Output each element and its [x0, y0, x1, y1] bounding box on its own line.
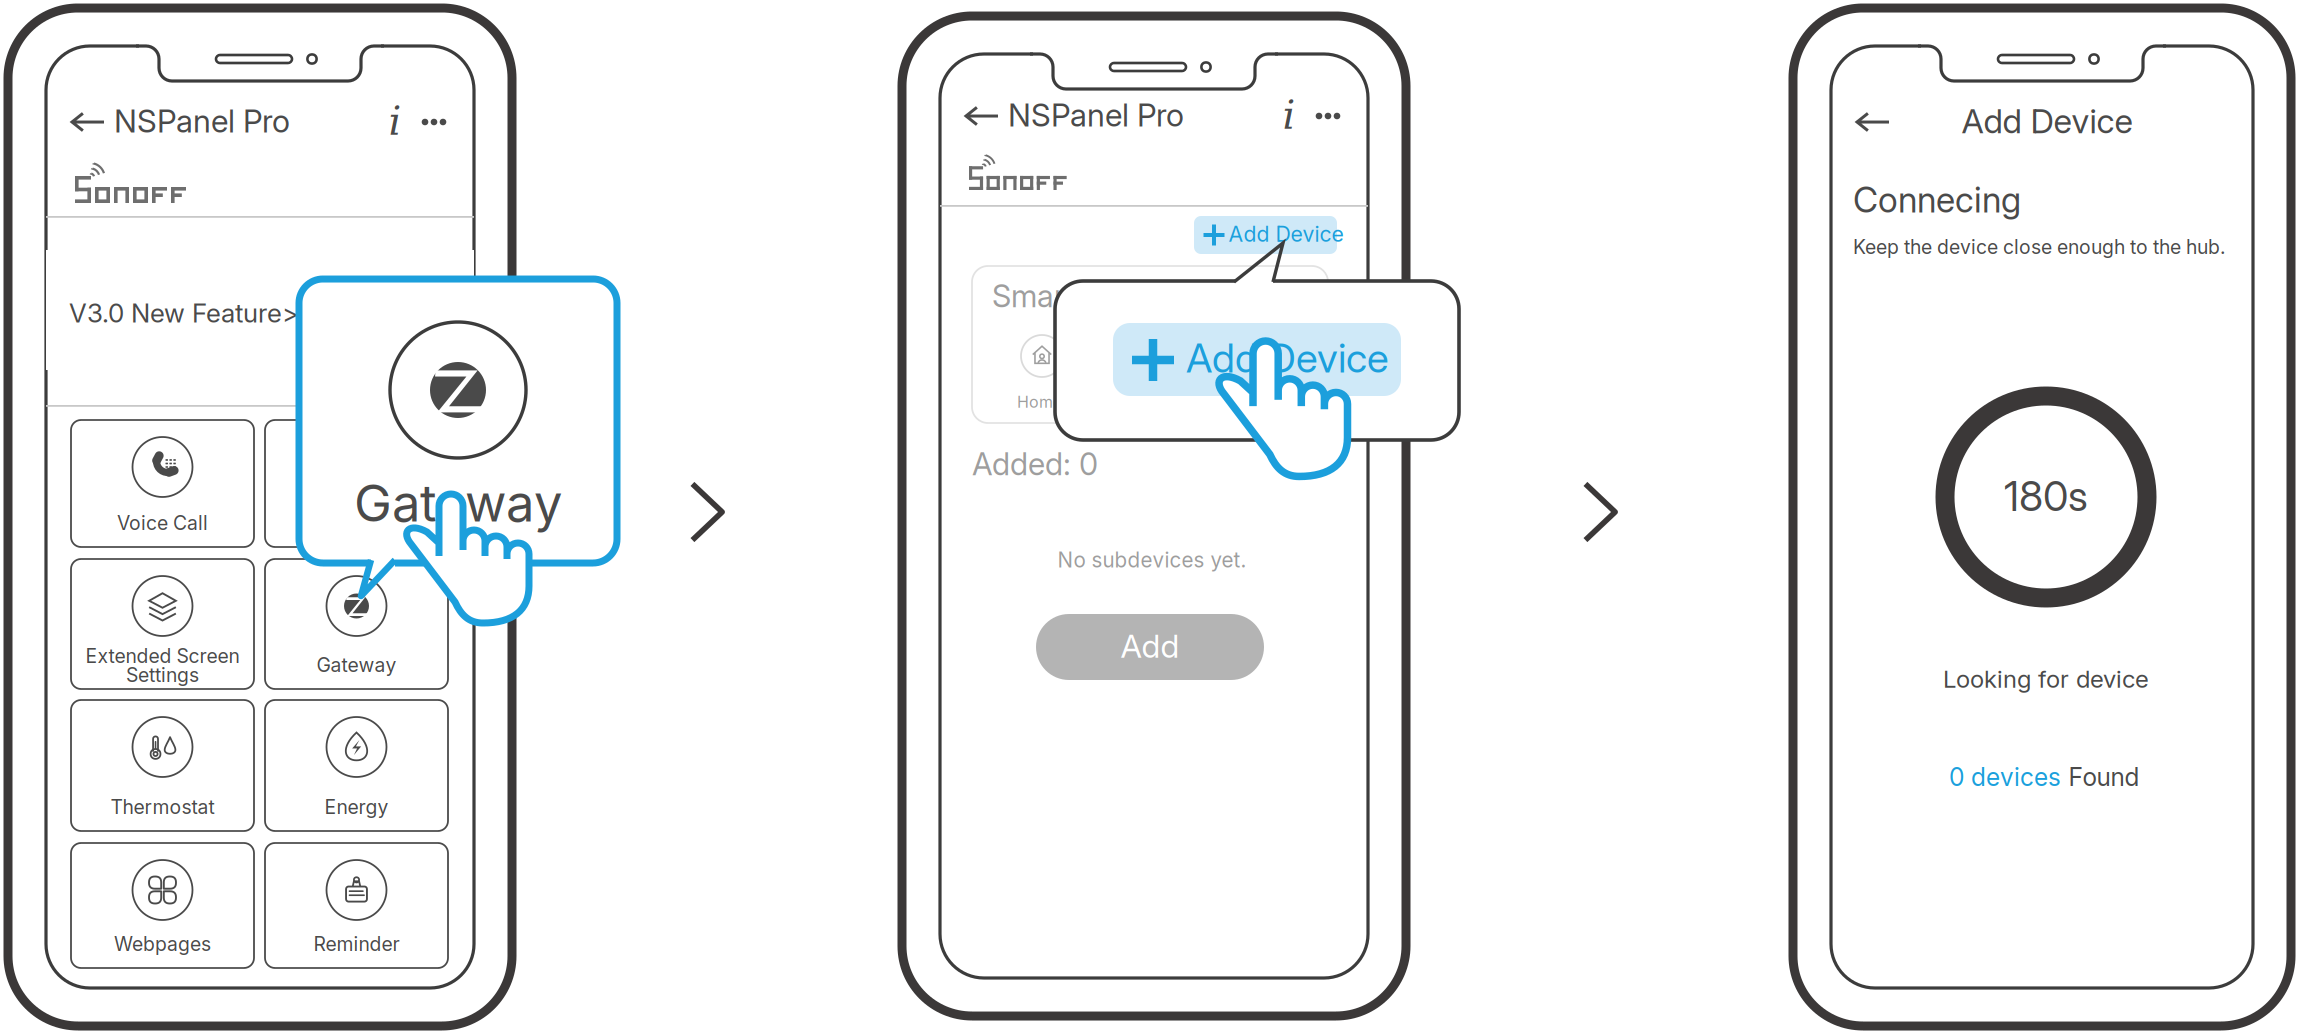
staticText: Keep the device close enough to the hub.: [1853, 235, 2226, 259]
staticText: i: [388, 98, 401, 144]
button[interactable]: Gateway: [0, 0, 2300, 1035]
staticText: Webpages: [114, 932, 211, 956]
button[interactable]: Gateway: [0, 0, 2300, 1035]
staticText: Voice Call: [117, 511, 208, 535]
button[interactable]: More options: [0, 0, 2300, 1035]
button[interactable]: Voice Call: [0, 0, 2300, 1035]
button[interactable]: [0, 0, 2300, 1035]
staticText: 0 devices: [1949, 762, 2061, 792]
staticText: Gateway: [354, 472, 562, 534]
staticText: Add Device: [1228, 221, 1343, 247]
staticText: NSPanel Pro: [114, 102, 290, 140]
button[interactable]: More options: [0, 0, 2300, 1035]
staticText: i: [1282, 92, 1295, 138]
staticText: Add Device: [1186, 334, 1389, 382]
staticText: Energy: [324, 795, 388, 819]
button[interactable]: Back: [0, 0, 2300, 1035]
staticText: Add: [1120, 627, 1179, 665]
staticText: Looking for device: [1943, 664, 2149, 693]
button[interactable]: Thermostat: [0, 0, 2300, 1035]
staticText: Smart: [992, 277, 1075, 314]
button[interactable]: Back: [0, 0, 2300, 1035]
staticText: V3.0 New Feature>: [69, 297, 299, 329]
button[interactable]: Webpages: [0, 0, 2300, 1035]
button[interactable]: Reminder: [0, 0, 2300, 1035]
button[interactable]: Energy: [0, 0, 2300, 1035]
button[interactable]: Add Device: [0, 0, 2300, 1035]
staticText: Connecing: [1853, 179, 2021, 221]
button[interactable]: Information: [0, 0, 2300, 1035]
staticText: Extended Screen: [85, 644, 239, 668]
button[interactable]: Information: [0, 0, 2300, 1035]
staticText: Home m: [1017, 392, 1081, 412]
staticText: NSPanel Pro: [1008, 96, 1184, 134]
staticText: Added: 0: [972, 445, 1098, 482]
staticText: Found: [2068, 762, 2139, 792]
button[interactable]: Extended Screen: [0, 0, 2300, 1035]
button[interactable]: V3.0 New Feature>: [0, 0, 2300, 1035]
button[interactable]: Back: [0, 0, 2300, 1035]
button[interactable]: Add Device: [0, 0, 2300, 1035]
staticText: Gateway: [316, 653, 396, 677]
staticText: Add Device: [1961, 101, 2132, 141]
staticText: No subdevices yet.: [1057, 547, 1246, 572]
button[interactable]: Add: [0, 0, 2300, 1035]
staticText: Reminder: [313, 932, 399, 956]
staticText: Thermostat: [110, 795, 214, 819]
staticText: Settings: [126, 663, 199, 687]
staticText: 180s: [2004, 471, 2088, 521]
